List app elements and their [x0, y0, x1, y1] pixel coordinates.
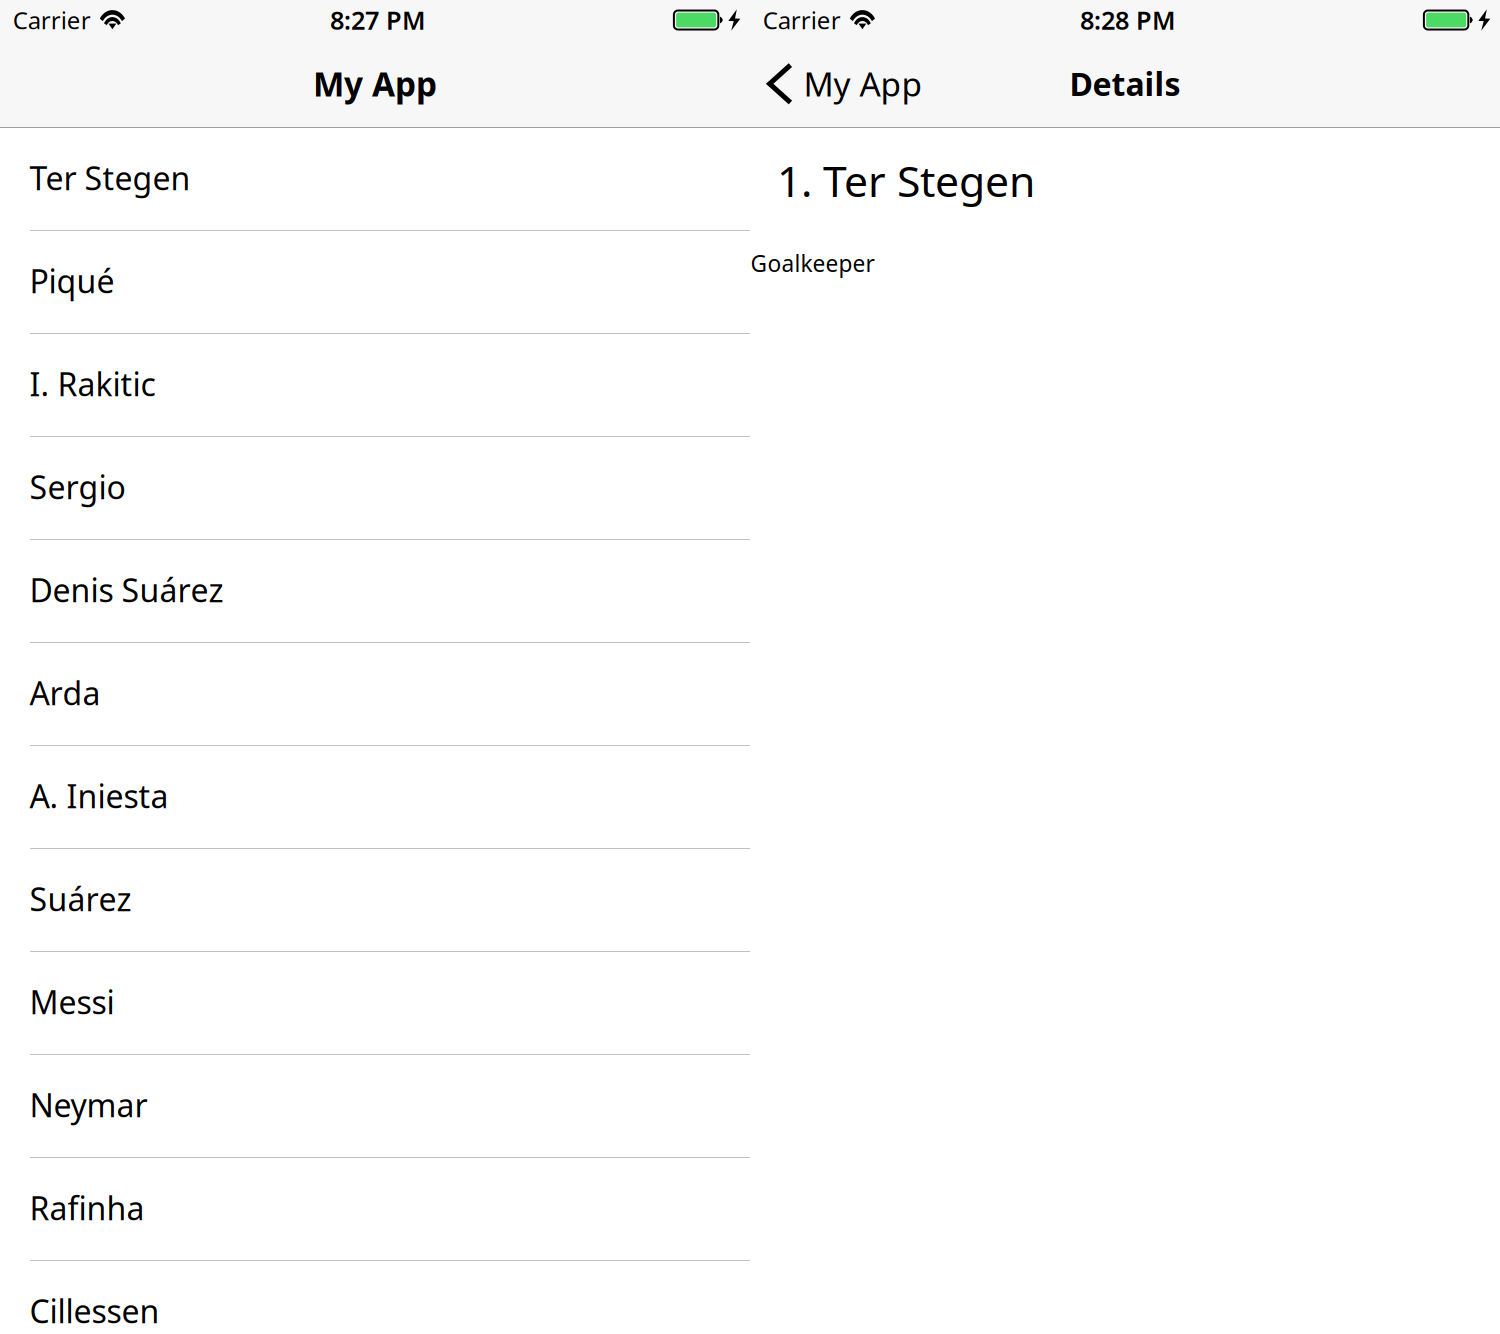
staticText: Goalkeeper — [751, 248, 875, 278]
staticText: Ter Stegen — [30, 157, 191, 199]
staticText: My App — [804, 61, 923, 106]
button[interactable]: A. Iniesta — [30, 746, 750, 849]
staticText: I. Rakitic — [30, 363, 156, 405]
staticText: Denis Suárez — [30, 569, 224, 611]
staticText: Cillessen — [30, 1290, 160, 1332]
staticText: Messi — [30, 981, 115, 1023]
button[interactable]: I. Rakitic — [30, 334, 750, 437]
button[interactable]: Cillessen — [30, 1261, 750, 1334]
staticText: Piqué — [30, 260, 115, 302]
button[interactable]: Rafinha — [30, 1158, 750, 1261]
button[interactable]: Piqué — [30, 231, 750, 334]
staticText: A. Iniesta — [30, 775, 169, 817]
button[interactable]: Suárez — [30, 849, 750, 952]
button[interactable]: Sergio — [30, 437, 750, 540]
button[interactable]: Ter Stegen — [30, 128, 750, 231]
staticText: Suárez — [30, 878, 132, 920]
button[interactable]: Neymar — [30, 1055, 750, 1158]
button[interactable]: Denis Suárez — [30, 540, 750, 643]
staticText: My App — [313, 61, 437, 106]
button[interactable]: Messi — [30, 952, 750, 1055]
staticText: Neymar — [30, 1084, 148, 1126]
staticText: Arda — [30, 672, 101, 714]
button[interactable]: Back to My App — [750, 40, 933, 127]
staticText: 1. Ter Stegen — [777, 152, 1035, 209]
staticText: 8:28 PM — [1080, 3, 1176, 37]
staticText: 8:27 PM — [330, 3, 426, 37]
staticText: Carrier — [763, 4, 841, 36]
staticText: Carrier — [13, 4, 91, 36]
button[interactable]: Arda — [30, 643, 750, 746]
staticText: Sergio — [30, 466, 126, 508]
staticText: Rafinha — [30, 1187, 145, 1229]
staticText: Details — [1069, 62, 1180, 105]
